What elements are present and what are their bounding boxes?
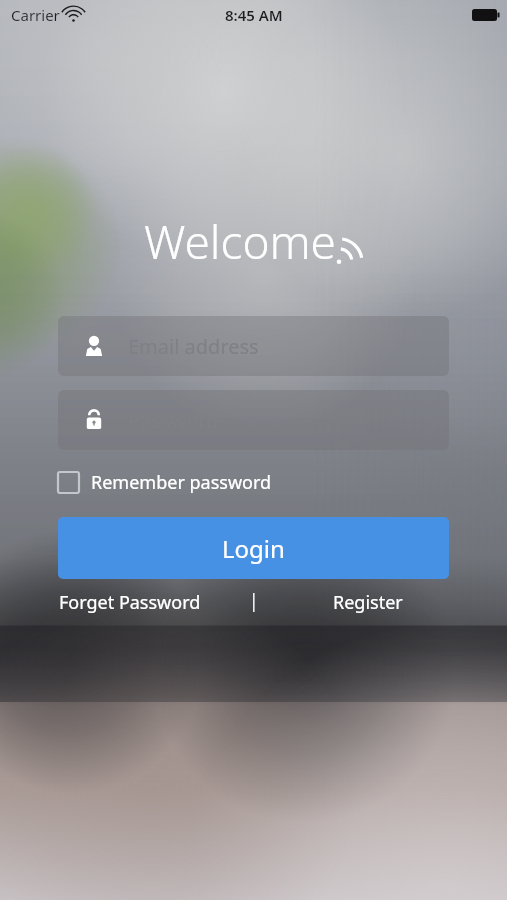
- staticText: Register: [333, 590, 403, 615]
- staticText: Email address: [128, 333, 259, 360]
- button[interactable]: Login: [58, 517, 449, 579]
- staticText: 8:45 AM: [225, 5, 283, 25]
- button[interactable]: Password: [58, 390, 449, 450]
- staticText: Welcome: [144, 210, 337, 273]
- staticText: Login: [222, 532, 285, 565]
- staticText: Remember password: [91, 470, 272, 495]
- button[interactable]: Email address: [58, 316, 449, 376]
- button[interactable]: Forget Password: [55, 586, 205, 619]
- button[interactable]: Register: [329, 586, 407, 619]
- staticText: Carrier: [11, 5, 60, 25]
- button[interactable]: Remember password: [58, 464, 272, 500]
- staticText: Forget Password: [59, 590, 201, 615]
